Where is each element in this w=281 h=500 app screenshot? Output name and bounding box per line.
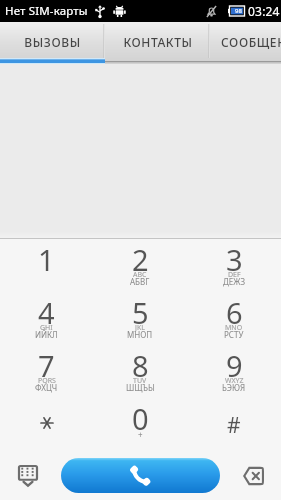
button[interactable]: 3: [187, 239, 281, 292]
staticText: АБВГ: [130, 276, 150, 287]
staticText: 4: [38, 293, 55, 332]
staticText: СООБЩЕНИЯ: [221, 34, 281, 50]
staticText: ФХЦЧ: [35, 382, 58, 393]
button[interactable]: 9: [187, 345, 281, 398]
staticText: PQRS: [38, 376, 56, 386]
staticText: 2: [132, 240, 149, 279]
staticText: 1: [38, 240, 55, 279]
staticText: TUV: [133, 376, 147, 386]
button[interactable]: 0: [93, 398, 187, 451]
button[interactable]: Backspace: [225, 451, 281, 500]
button[interactable]: 2: [93, 239, 187, 292]
button[interactable]: 8: [93, 345, 187, 398]
staticText: ЬЭЮЯ: [222, 382, 246, 393]
staticText: #: [227, 411, 241, 440]
staticText: МНОП: [127, 329, 153, 340]
button[interactable]: Call: [61, 458, 220, 493]
staticText: РСТУ: [224, 329, 244, 340]
staticText: MNO: [225, 323, 243, 333]
button[interactable]: 4: [0, 292, 93, 345]
button[interactable]: ВЫЗОВЫ: [0, 22, 105, 64]
button[interactable]: #: [187, 398, 281, 451]
button[interactable]: СООБЩЕНИЯ: [210, 22, 281, 64]
button[interactable]: 6: [187, 292, 281, 345]
staticText: GHI: [40, 323, 53, 333]
staticText: 7: [38, 346, 55, 385]
button[interactable]: КОНТАКТЫ: [105, 22, 210, 64]
staticText: WXYZ: [225, 376, 244, 386]
staticText: ШЩЪЫ: [126, 382, 155, 393]
staticText: 8: [132, 346, 149, 385]
staticText: 98: [235, 7, 242, 15]
staticText: ABC: [133, 270, 147, 280]
staticText: 0: [132, 399, 149, 438]
button[interactable]: Hide keypad: [0, 451, 56, 500]
button[interactable]: 1: [0, 239, 93, 292]
staticText: ВЫЗОВЫ: [24, 34, 81, 50]
staticText: Нет SIM-карты: [5, 3, 88, 19]
staticText: ДЕЖЗ: [223, 276, 246, 287]
button[interactable]: 5: [93, 292, 187, 345]
staticText: 3: [226, 240, 243, 279]
staticText: 03:24: [248, 3, 280, 19]
button[interactable]: [0, 398, 93, 451]
staticText: ИЙКЛ: [35, 329, 58, 340]
staticText: 6: [226, 293, 243, 332]
button[interactable]: 7: [0, 345, 93, 398]
staticText: DEF: [228, 270, 241, 280]
staticText: +: [138, 429, 143, 440]
staticText: КОНТАКТЫ: [123, 34, 193, 50]
staticText: JKL: [135, 323, 145, 333]
staticText: 5: [132, 293, 149, 332]
staticText: 9: [226, 346, 243, 385]
